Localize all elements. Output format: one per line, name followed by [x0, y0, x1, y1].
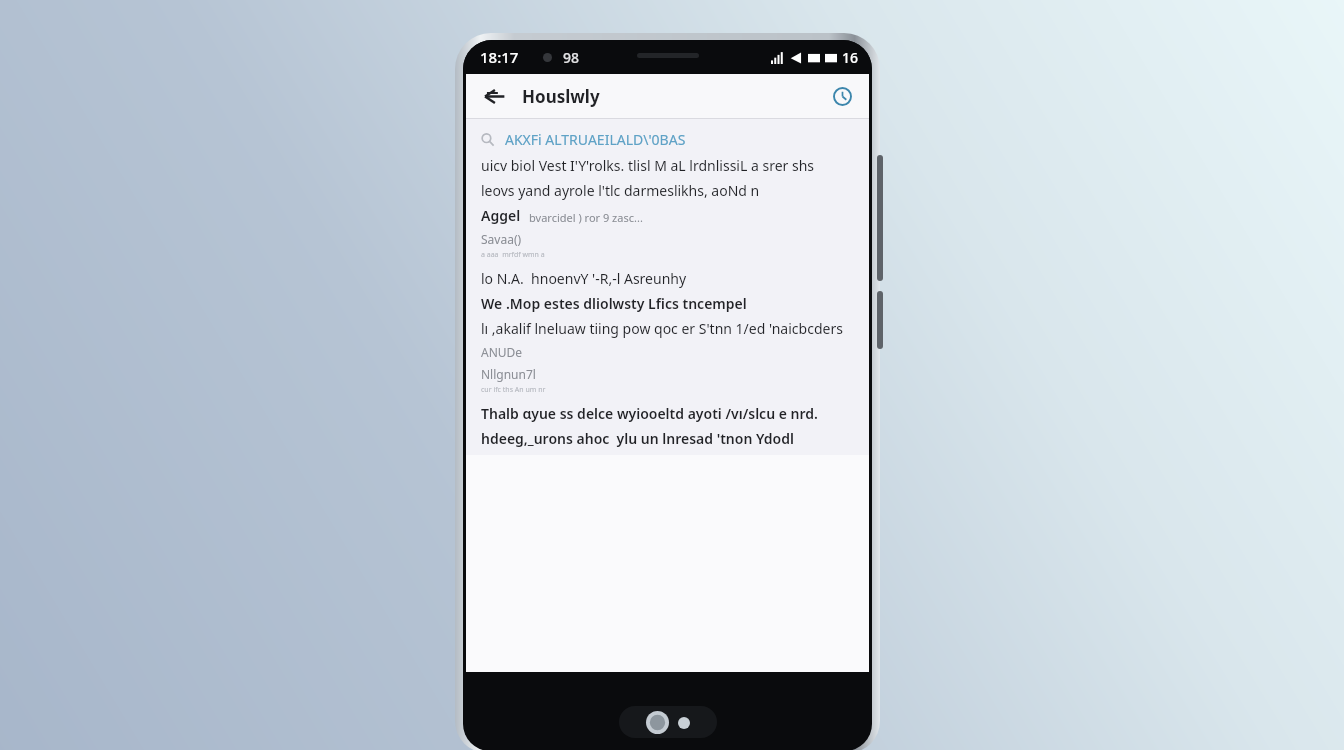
staticText: We .Mop estes dliolwsty Lfics tncempel [481, 294, 747, 313]
staticText: a aaa mrfdf wmn a [481, 250, 545, 260]
staticText: Savaa() [481, 231, 522, 247]
button[interactable]: History [828, 82, 856, 110]
staticText: bvarcidel ) ror 9 zasc... [529, 210, 643, 225]
staticText: cur ifc ths An um nr [481, 385, 546, 395]
staticText: Nllgnun7l [481, 366, 536, 382]
staticText: hdeeɡ,_urons ahoc ylu un lnresad 'tnon Y… [481, 429, 857, 448]
staticText: ANUDe [481, 344, 523, 360]
staticText: Aggel [481, 206, 521, 225]
staticText: Houslwly [522, 85, 600, 108]
staticText: Thalb ɑyue ss delce wyiooeltd ayoti /vı/… [481, 404, 818, 423]
staticText: AKXFi ALTRUAEILALD\'0BAS [505, 130, 686, 149]
button[interactable]: Back [479, 81, 509, 111]
staticText: lo N.A. hnoenvY '-R,-l Asreunhy [481, 269, 687, 288]
button[interactable]: Home [619, 706, 717, 738]
staticText: 18:17 [480, 47, 519, 67]
staticText: 98 [563, 48, 580, 67]
staticText: 16 [842, 48, 859, 67]
staticText: uicv biol Vest I'Y'rolks. tlisl M aL lrd… [481, 156, 815, 175]
staticText: leovs yand ayrole l'tlc darmeslikhs, aoN… [481, 181, 760, 200]
staticText: lı ,akalif lneluaw tiing pow qoc er S'tn… [481, 319, 843, 338]
